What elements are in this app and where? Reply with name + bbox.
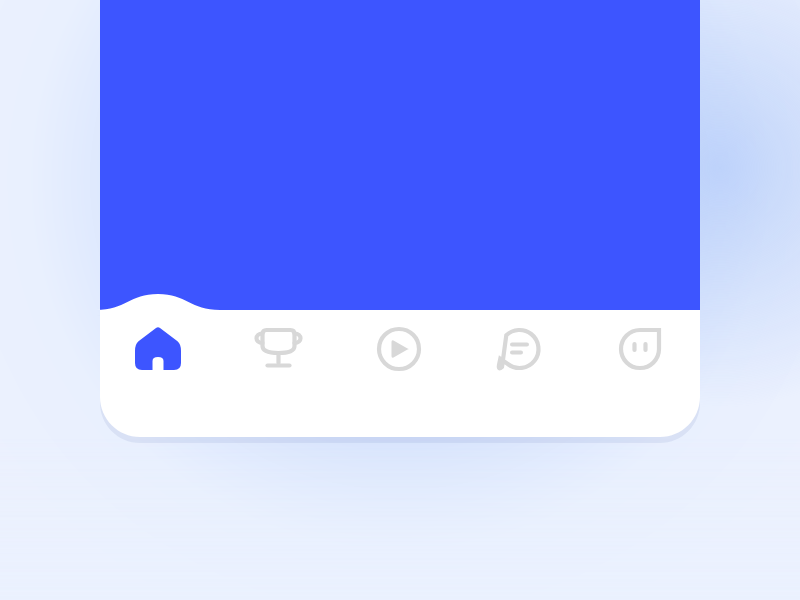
- button[interactable]: Messages: [476, 310, 564, 437]
- button[interactable]: Achievements: [235, 310, 323, 437]
- button[interactable]: Profile: [596, 310, 684, 437]
- button[interactable]: Home: [114, 310, 202, 437]
- button[interactable]: Videos: [355, 310, 443, 437]
